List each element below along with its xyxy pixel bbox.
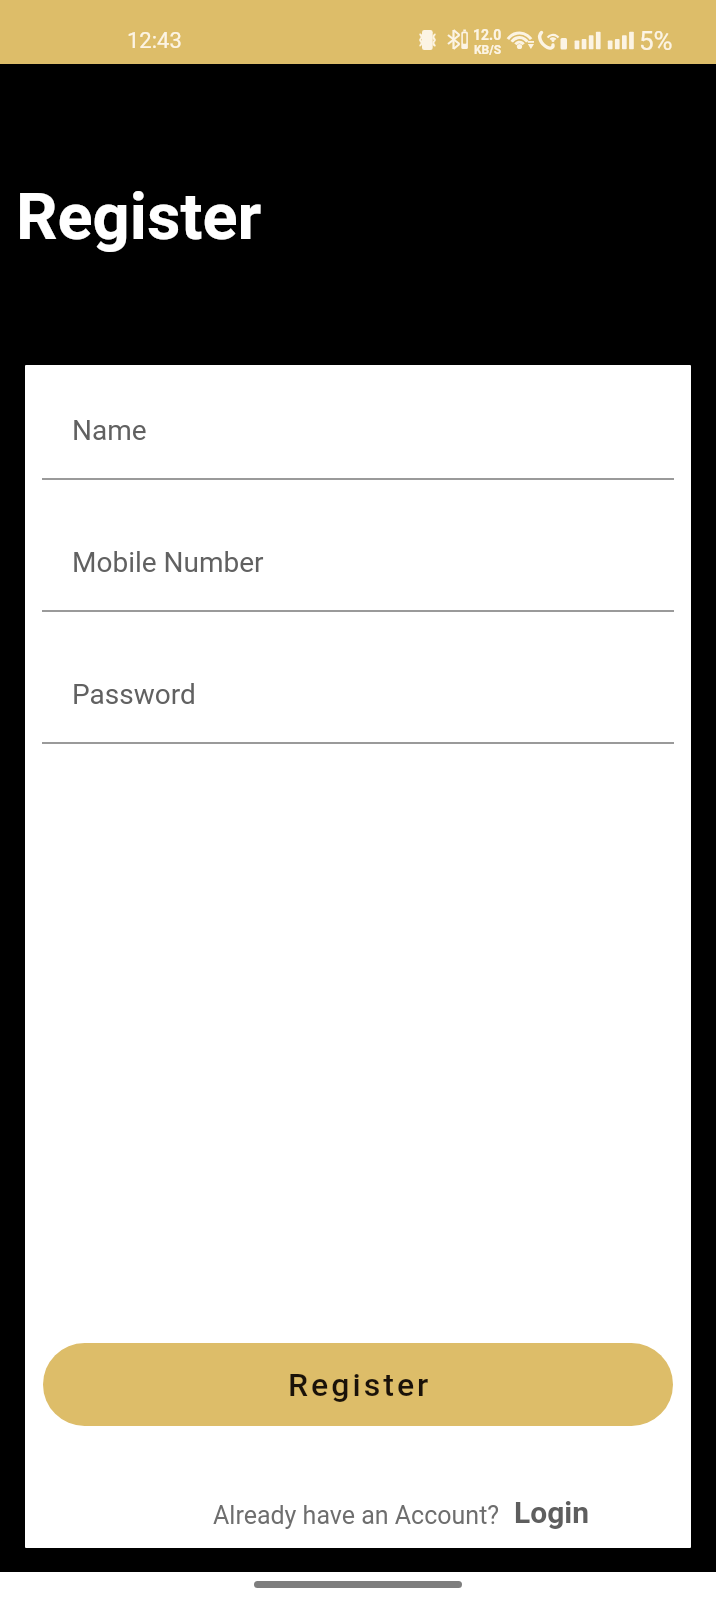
button[interactable]: Password xyxy=(42,667,674,744)
staticText: Register xyxy=(288,1366,432,1404)
staticText: Already have an Account? xyxy=(213,1501,500,1530)
button[interactable]: Mobile Number xyxy=(42,535,674,612)
staticText: Password xyxy=(72,678,196,711)
button[interactable]: Home xyxy=(254,1581,462,1588)
button[interactable]: Register xyxy=(43,1343,673,1426)
staticText: Mobile Number xyxy=(72,546,264,579)
staticText: 5% xyxy=(639,26,673,56)
staticText: 12:43 xyxy=(127,28,182,54)
button[interactable]: Name xyxy=(42,403,674,480)
staticText: Name xyxy=(72,414,147,447)
staticText: 12.0 xyxy=(473,27,502,43)
staticText: Login xyxy=(514,1495,590,1530)
button[interactable]: Login xyxy=(514,1495,590,1530)
staticText: KB/S xyxy=(474,43,502,57)
staticText: Register xyxy=(16,179,262,255)
